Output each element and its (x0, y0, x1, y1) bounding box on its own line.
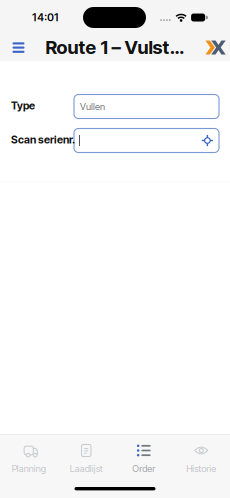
staticText: Scan serienr. (11, 133, 75, 146)
button[interactable]: Open menu (5, 35, 31, 61)
button[interactable]: Laadlijst (57, 435, 115, 477)
staticText: Planning (12, 463, 46, 474)
button[interactable]: Historie (172, 435, 230, 477)
staticText: Type (11, 99, 35, 112)
button[interactable]: Planning (0, 435, 57, 477)
staticText: Order (132, 463, 155, 474)
staticText: Laadlijst (70, 463, 103, 474)
button[interactable]: Order (115, 435, 172, 477)
staticText: Vullen (80, 101, 105, 112)
staticText: Historie (186, 463, 216, 474)
staticText: Route 1 – Vulst… (45, 36, 183, 59)
button[interactable]: Company logo (198, 35, 228, 59)
staticText: 14:01 (32, 11, 59, 24)
